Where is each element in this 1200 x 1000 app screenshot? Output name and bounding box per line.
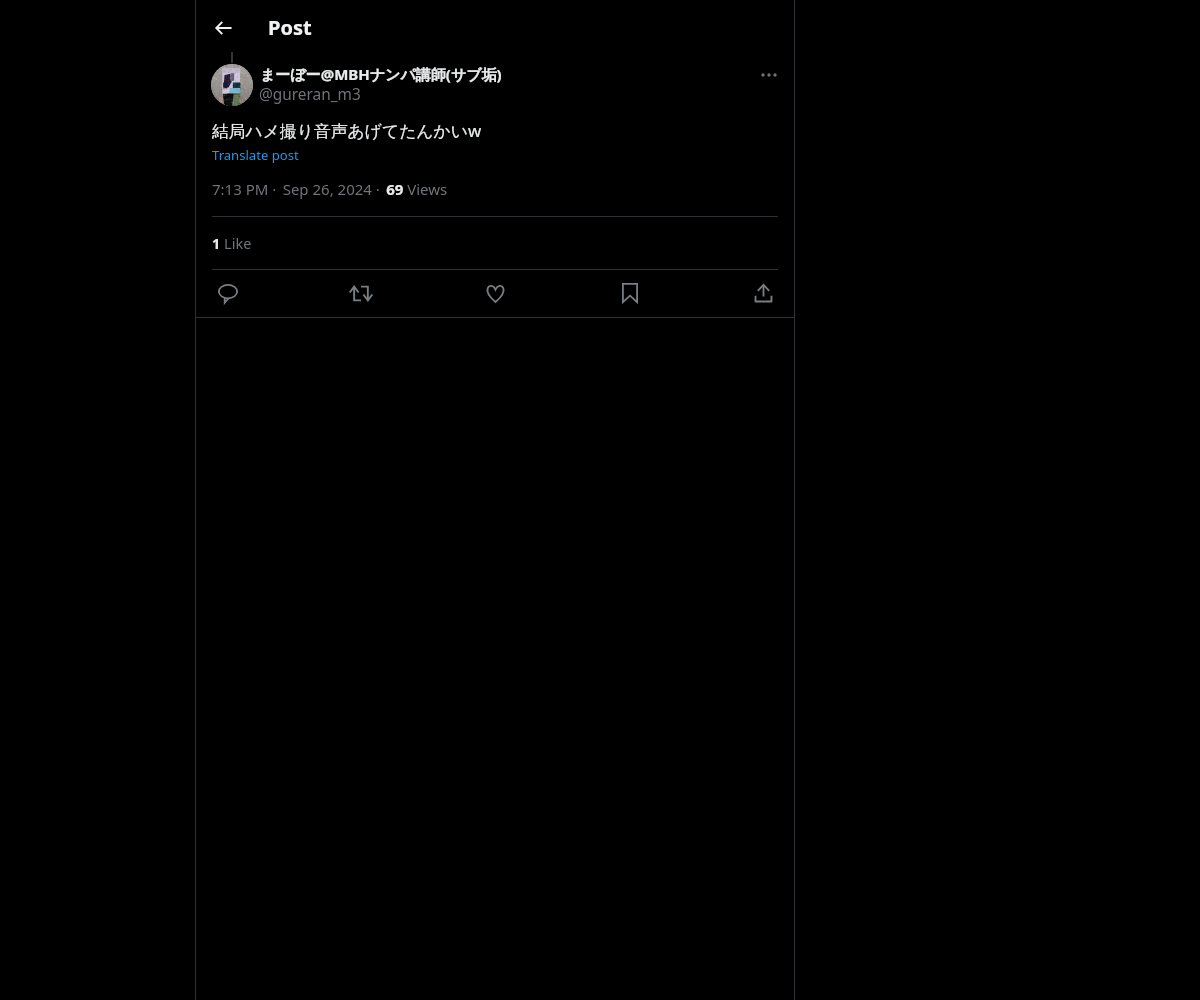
button[interactable]: まーぼー@MBHナンパ講師(サブ垢) xyxy=(260,64,502,84)
staticText: 7:13 PM · Sep 26, 2024 · 69 Views xyxy=(212,179,448,199)
staticText: @gureran_m3 xyxy=(259,84,361,105)
button[interactable]: 1 Like xyxy=(212,233,252,253)
button[interactable]: Like xyxy=(477,275,513,311)
button[interactable]: Repost xyxy=(343,275,379,311)
button[interactable]: Translate post xyxy=(212,146,299,164)
button[interactable]: More options xyxy=(753,59,785,91)
button[interactable]: Back xyxy=(206,10,242,46)
staticText: 結局ハメ撮り音声あげてたんかいw xyxy=(212,119,482,142)
button[interactable]: @gureran_m3 xyxy=(259,84,361,105)
button[interactable]: Share xyxy=(745,275,781,311)
button[interactable]: Profile photo xyxy=(211,64,253,106)
button[interactable]: Bookmark xyxy=(612,275,648,311)
staticText: まーぼー@MBHナンパ講師(サブ垢) xyxy=(260,64,502,84)
button[interactable]: Reply xyxy=(210,275,246,311)
staticText: Post xyxy=(268,14,312,41)
